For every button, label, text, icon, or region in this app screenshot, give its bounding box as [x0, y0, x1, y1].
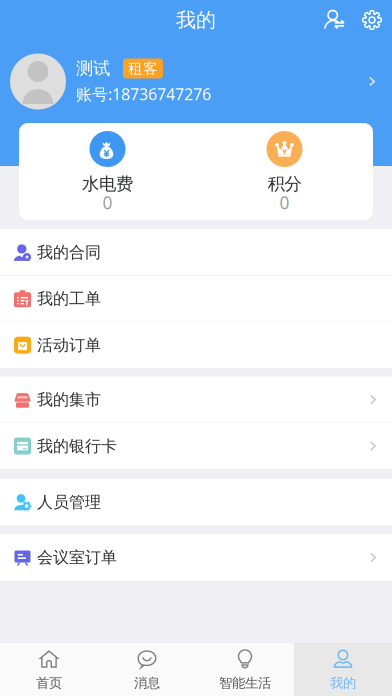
button[interactable]: 消息: [98, 643, 196, 696]
button[interactable]: 智能生活: [196, 643, 294, 696]
button[interactable]: 首页: [0, 643, 98, 696]
staticText: 活动订单: [37, 335, 101, 355]
staticText: 我的合同: [37, 242, 101, 262]
button[interactable]: 会议室订单: [0, 535, 392, 580]
staticText: 我的: [176, 8, 216, 32]
staticText: 账号:18736747276: [76, 83, 211, 105]
staticText: 我的: [330, 675, 356, 691]
button[interactable]: 设置: [353, 0, 391, 40]
button[interactable]: 活动订单: [0, 322, 392, 368]
staticText: 首页: [36, 675, 62, 691]
staticText: 0: [102, 191, 112, 214]
staticText: 租客: [128, 59, 158, 77]
button[interactable]: 水电费: [19, 123, 196, 220]
button[interactable]: 切换账号: [317, 0, 353, 40]
button[interactable]: 我的合同: [0, 229, 392, 275]
staticText: 消息: [134, 675, 160, 691]
staticText: 会议室订单: [37, 548, 117, 567]
button[interactable]: 测试: [0, 40, 392, 123]
button[interactable]: 人员管理: [0, 479, 392, 525]
staticText: 人员管理: [37, 492, 101, 512]
staticText: 积分: [267, 173, 301, 195]
button[interactable]: 我的集市: [0, 377, 392, 422]
staticText: 0: [279, 191, 289, 214]
button[interactable]: 积分: [196, 123, 373, 220]
staticText: 我的银行卡: [37, 436, 117, 456]
staticText: 测试: [76, 58, 110, 79]
button[interactable]: 我的: [294, 643, 392, 696]
button[interactable]: 我的工单: [0, 276, 392, 322]
staticText: 智能生活: [219, 675, 271, 691]
button[interactable]: 我的银行卡: [0, 423, 392, 469]
staticText: 水电费: [82, 173, 133, 195]
staticText: 我的工单: [37, 289, 101, 309]
staticText: 我的集市: [37, 390, 101, 409]
